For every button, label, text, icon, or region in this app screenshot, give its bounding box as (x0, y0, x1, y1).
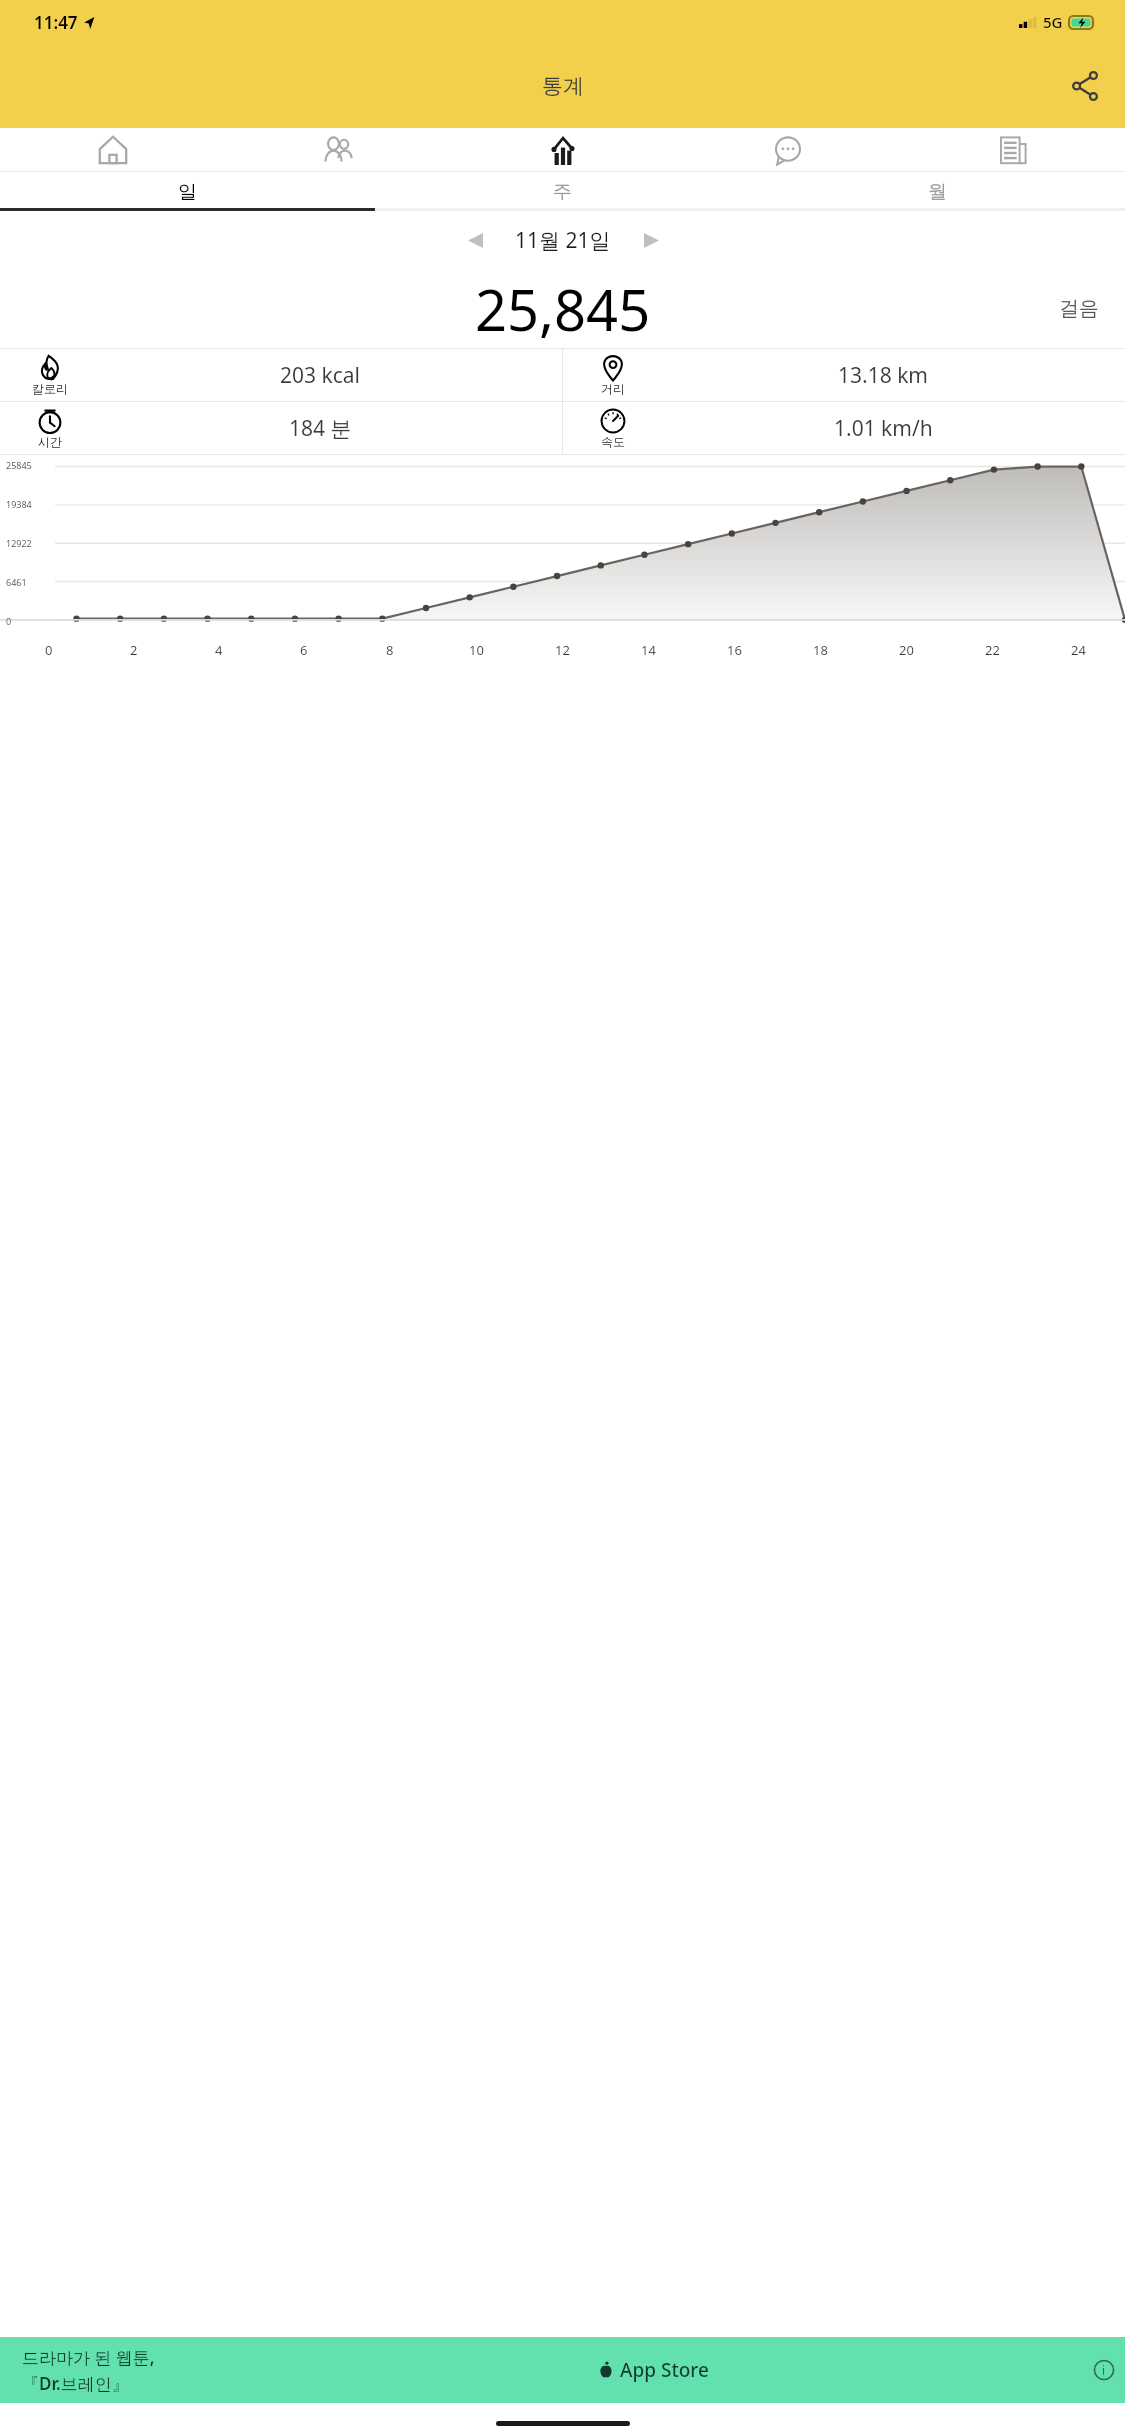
staticText: 속도 (601, 434, 625, 449)
staticText: 주 (553, 180, 572, 204)
button[interactable]: 거리 (563, 349, 1125, 401)
staticText: 19384 (6, 498, 32, 510)
button[interactable]: Previous day (453, 218, 497, 262)
staticText: 13.18 km (838, 361, 928, 390)
button[interactable]: News (900, 128, 1125, 171)
staticText: 18 (813, 641, 828, 659)
button[interactable]: 드라마가 된 웹툰, (0, 2337, 1125, 2403)
staticText: 칼로리 (32, 381, 68, 396)
staticText: 드라마가 된 웹툰, (22, 2346, 155, 2369)
staticText: 14 (641, 641, 656, 659)
staticText: 0 (45, 641, 53, 659)
staticText: 20 (899, 641, 914, 659)
staticText: 22 (985, 641, 1000, 659)
staticText: 2 (130, 641, 138, 659)
staticText: 25845 (6, 459, 32, 471)
button[interactable]: Stats (450, 128, 675, 171)
button[interactable]: 주 (375, 172, 750, 211)
button[interactable]: 속도 (563, 402, 1125, 454)
button[interactable]: Ad info (1093, 2359, 1115, 2381)
staticText: 10 (469, 641, 484, 659)
staticText: 0 (6, 615, 12, 627)
staticText: 월 (928, 180, 947, 204)
button[interactable]: 일 (0, 172, 375, 211)
staticText: 8 (386, 641, 394, 659)
staticText: 184 분 (289, 414, 352, 443)
staticText: 16 (727, 641, 742, 659)
staticText: 1.01 km/h (834, 414, 933, 443)
button[interactable]: Chat (675, 128, 900, 171)
button[interactable]: Home (0, 128, 225, 171)
staticText: 12 (555, 641, 570, 659)
staticText: 시간 (38, 434, 62, 449)
staticText: i (1102, 2362, 1106, 2378)
button[interactable]: 월 (750, 172, 1125, 211)
staticText: 11월 21일 (515, 226, 611, 255)
staticText: 걸음 (1059, 296, 1099, 321)
staticText: 일 (178, 180, 197, 204)
staticText: 6 (300, 641, 308, 659)
button[interactable]: Friends (225, 128, 450, 171)
staticText: 5G (1043, 12, 1063, 32)
staticText: 거리 (601, 381, 625, 396)
button[interactable]: Next day (629, 218, 673, 262)
staticText: 25,845 (475, 271, 651, 347)
button[interactable]: Share (1059, 60, 1111, 112)
staticText: 6461 (6, 576, 27, 588)
staticText: 11:47 (34, 11, 78, 34)
staticText: 12922 (6, 537, 32, 549)
button[interactable]: 시간 (0, 402, 562, 454)
staticText: 4 (215, 641, 223, 659)
button[interactable]: 칼로리 (0, 349, 562, 401)
staticText: 『Dr.브레인』 (22, 2372, 129, 2395)
staticText: 203 kcal (280, 361, 360, 390)
staticText: 24 (1071, 641, 1086, 659)
staticText: App Store (620, 2357, 709, 2383)
staticText: 통계 (542, 73, 584, 99)
